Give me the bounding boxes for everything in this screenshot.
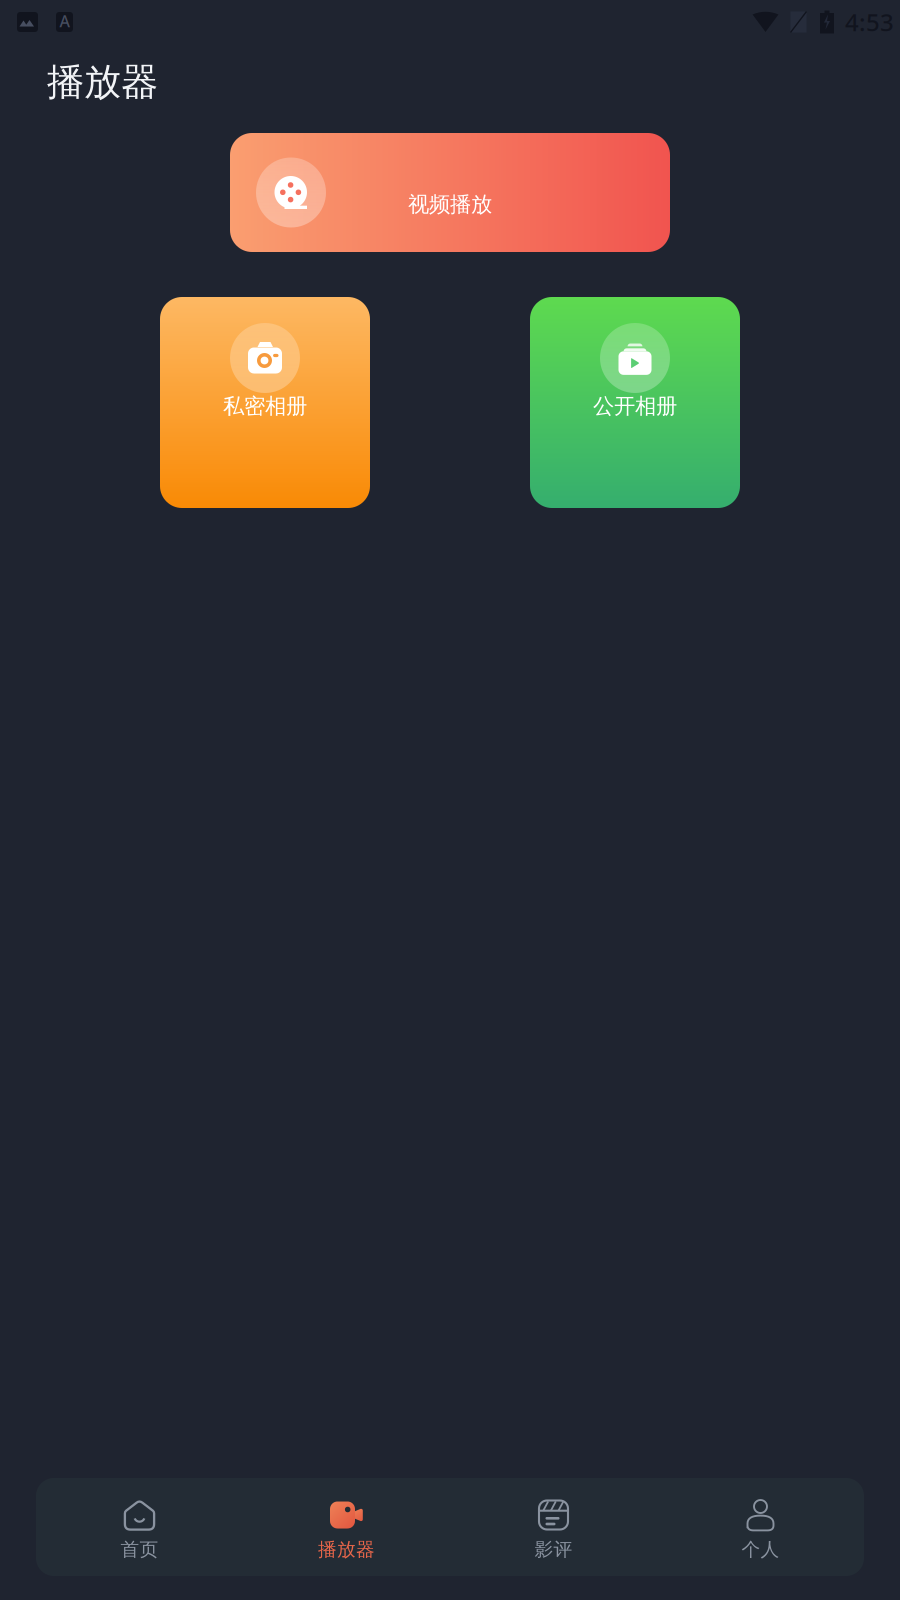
button[interactable]: 影评 [450,1478,657,1576]
staticText: 首页 [120,1538,158,1561]
button[interactable]: 首页 [36,1478,243,1576]
staticText: 视频播放 [408,191,492,218]
button[interactable]: 私密相册 [160,297,370,508]
staticText: 个人 [741,1538,779,1561]
staticText: 公开相册 [593,393,677,419]
button[interactable]: 播放器 [243,1478,450,1576]
staticText: 私密相册 [223,393,307,419]
staticText: A [59,10,69,32]
staticText: 播放器 [47,59,158,105]
staticText: 影评 [534,1538,572,1561]
button[interactable]: 个人 [657,1478,864,1576]
staticText: 播放器 [318,1538,375,1561]
button[interactable]: 公开相册 [530,297,740,508]
staticText: 4:53 [845,6,894,38]
button[interactable]: 视频播放 [230,133,670,252]
